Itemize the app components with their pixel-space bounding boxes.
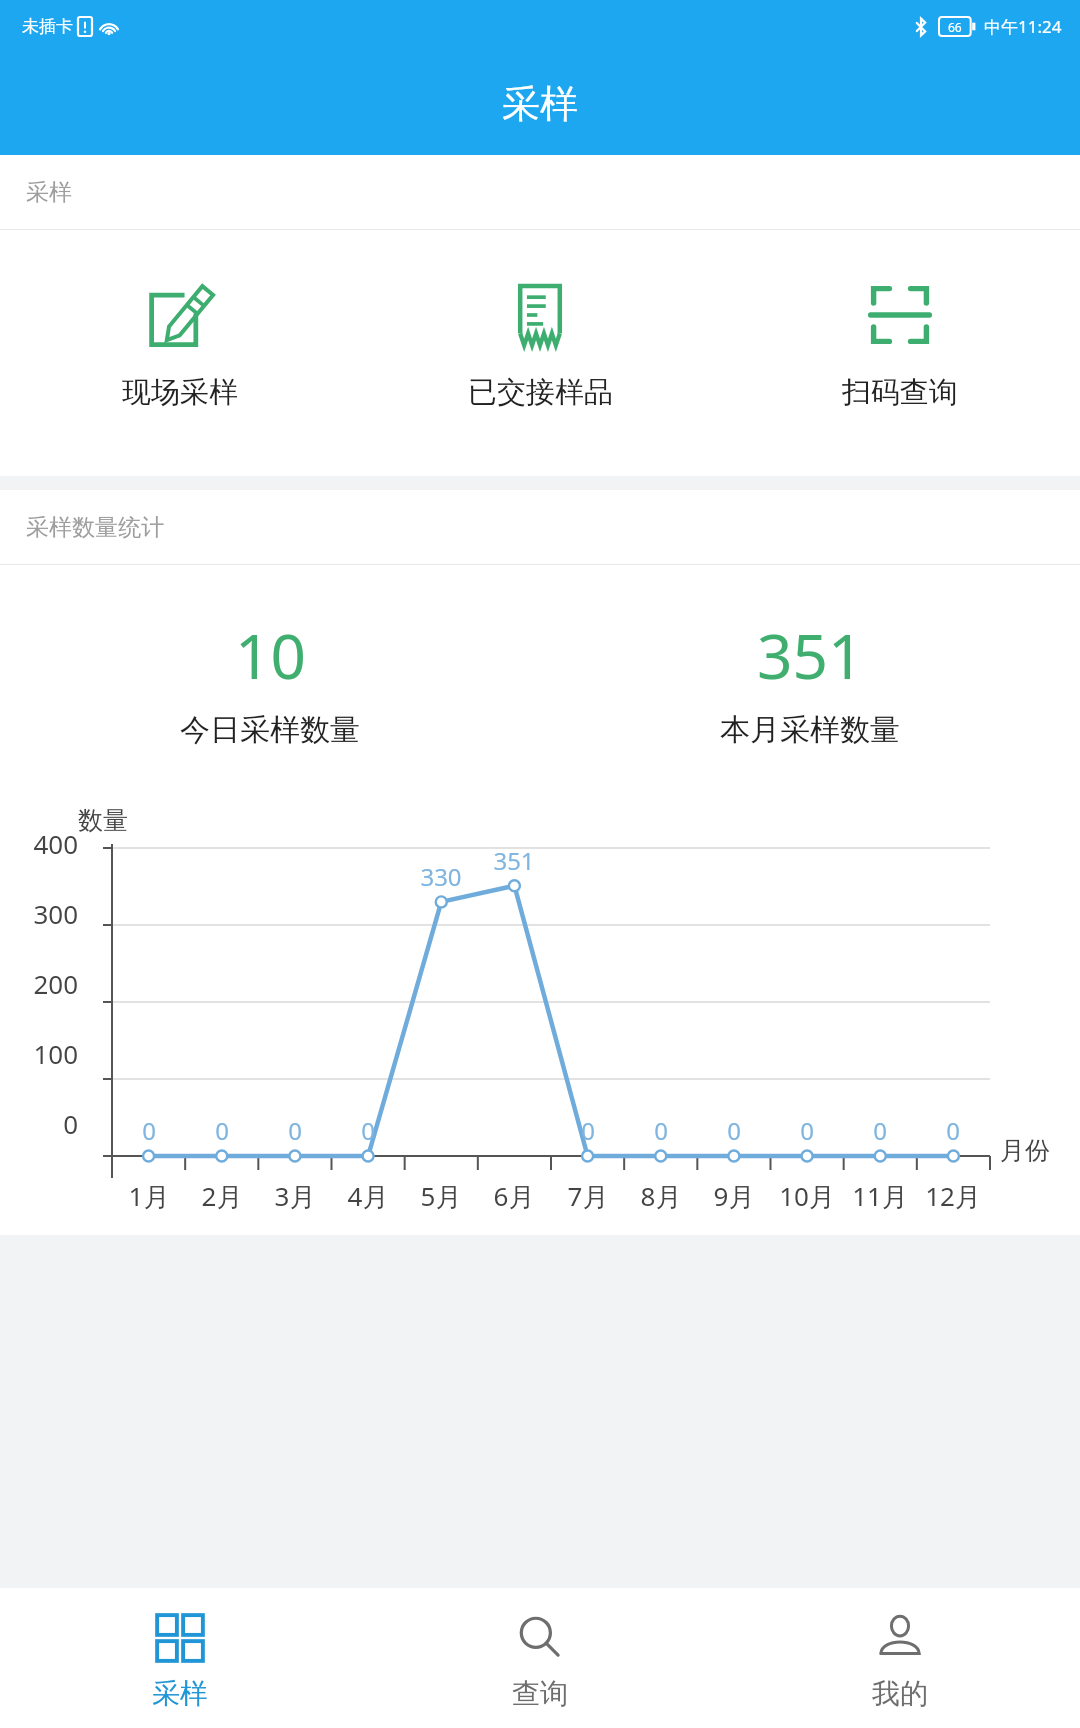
staticText: 0 (182, 1114, 262, 1147)
staticText: 我的 (872, 1676, 928, 1711)
staticText: 0 (109, 1114, 189, 1147)
staticText: 100 (0, 1036, 78, 1071)
staticText: 0 (694, 1114, 774, 1147)
staticText: 0 (621, 1114, 701, 1147)
staticText: 10月 (762, 1178, 852, 1214)
staticText: 数量 (78, 805, 128, 836)
staticText: 11月 (835, 1178, 925, 1214)
staticText: 扫码查询 (842, 374, 958, 411)
staticText: 7月 (543, 1178, 633, 1214)
button[interactable]: 10 (0, 565, 540, 795)
staticText: 1月 (104, 1178, 194, 1214)
staticText: 8月 (616, 1178, 706, 1214)
staticText: 月份 (1000, 1135, 1050, 1166)
button[interactable]: 扫码查询 (720, 230, 1080, 476)
staticText: 0 (548, 1114, 628, 1147)
staticText: 66 (948, 19, 962, 35)
staticText: 今日采样数量 (180, 711, 360, 749)
staticText: 已交接样品 (468, 374, 613, 411)
staticText: 采样 (152, 1676, 208, 1711)
staticText: 351 (757, 613, 864, 697)
staticText: 查询 (512, 1676, 568, 1711)
staticText: 400 (0, 826, 78, 861)
staticText: 3月 (250, 1178, 340, 1214)
button[interactable]: 我的 (720, 1588, 1080, 1728)
staticText: 6月 (469, 1178, 559, 1214)
staticText: 12月 (908, 1178, 998, 1214)
staticText: 0 (328, 1114, 408, 1147)
staticText: 10 (235, 613, 306, 697)
staticText: 0 (767, 1114, 847, 1147)
staticText: 9月 (689, 1178, 779, 1214)
staticText: 采样数量统计 (26, 513, 164, 542)
staticText: 中午11:24 (984, 15, 1062, 38)
staticText: 0 (840, 1114, 920, 1147)
button[interactable]: 采样 (0, 1588, 360, 1728)
staticText: 2月 (177, 1178, 267, 1214)
staticText: 330 (401, 860, 481, 893)
staticText: 300 (0, 896, 78, 931)
staticText: 0 (255, 1114, 335, 1147)
staticText: 采样 (26, 178, 72, 207)
staticText: 351 (474, 844, 554, 877)
staticText: 4月 (323, 1178, 413, 1214)
staticText: 未插卡 (22, 16, 73, 37)
button[interactable]: 已交接样品 (360, 230, 720, 476)
staticText: 0 (0, 1106, 78, 1141)
staticText: 5月 (396, 1178, 486, 1214)
button[interactable]: 查询 (360, 1588, 720, 1728)
staticText: 0 (913, 1114, 993, 1147)
staticText: 200 (0, 966, 78, 1001)
button[interactable]: 现场采样 (0, 230, 360, 476)
button[interactable]: 351 (540, 565, 1080, 795)
staticText: 现场采样 (122, 374, 238, 411)
staticText: 采样 (502, 80, 578, 128)
staticText: 本月采样数量 (720, 711, 900, 749)
